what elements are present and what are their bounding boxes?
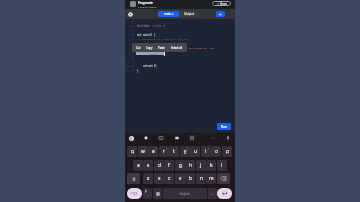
staticText: o (215, 148, 218, 155)
button[interactable]: Run (217, 123, 231, 130)
staticText: 6 (187, 147, 189, 150)
staticText: 5 (129, 38, 131, 41)
button[interactable]: Cut (135, 45, 142, 51)
staticText: y (184, 148, 187, 155)
button[interactable]: x (154, 173, 164, 184)
button[interactable]: l (217, 160, 227, 171)
staticText: 10 (127, 60, 131, 63)
staticText: 2 (145, 147, 147, 150)
staticText: 3 (129, 29, 131, 32)
button[interactable]: a (133, 160, 143, 171)
button[interactable]: Output (179, 11, 199, 17)
button[interactable]: g (175, 160, 185, 171)
button[interactable]: Voice input (226, 136, 230, 140)
button[interactable]: c (164, 173, 174, 184)
staticText: m (209, 175, 214, 182)
button[interactable]: Period (208, 188, 217, 199)
button[interactable]: o (211, 146, 221, 157)
staticText: 11 (127, 64, 131, 67)
staticText: d (158, 162, 161, 169)
staticText: t (173, 148, 175, 155)
staticText: 8 (208, 147, 210, 150)
staticText: <stdio.h> (152, 24, 167, 28)
button[interactable]: Stickers (144, 136, 148, 140)
button[interactable]: Question mark (143, 188, 152, 199)
button[interactable]: e (148, 146, 158, 157)
staticText: l (221, 162, 223, 169)
staticText: Select all (171, 46, 183, 50)
staticText: 6 (129, 42, 131, 45)
staticText: 0 (229, 147, 231, 150)
staticText: j (200, 162, 202, 169)
staticText: . (212, 191, 213, 196)
staticText: ?123 (131, 192, 138, 196)
staticText: English (180, 192, 190, 196)
button[interactable]: Shift (127, 173, 140, 184)
button[interactable]: w (138, 146, 148, 157)
button[interactable]: ?123 (127, 188, 142, 199)
staticText: 4 (166, 147, 168, 150)
button[interactable]: d (154, 160, 164, 171)
button[interactable]: z (143, 173, 153, 184)
staticText: f (168, 162, 170, 169)
button[interactable]: r (159, 146, 169, 157)
button[interactable]: English (163, 188, 207, 199)
button[interactable]: b (185, 173, 195, 184)
staticText: v (179, 175, 182, 182)
button[interactable]: Google (129, 136, 134, 141)
button[interactable]: u (190, 146, 200, 157)
staticText: g (179, 162, 182, 169)
button[interactable]: q (127, 146, 137, 157)
button[interactable]: Copy (145, 45, 154, 51)
button[interactable]: GIF (159, 136, 163, 140)
button[interactable]: j (196, 160, 206, 171)
staticText: 5 (176, 147, 178, 150)
staticText: s (147, 162, 150, 169)
staticText: z (147, 175, 150, 182)
staticText: p (226, 148, 229, 155)
button[interactable]: Settings (190, 136, 194, 140)
staticText: #include (137, 24, 152, 28)
button[interactable]: v (175, 173, 185, 184)
button[interactable]: s (143, 160, 153, 171)
button[interactable]: Enter (217, 188, 232, 199)
button[interactable]: n (196, 173, 206, 184)
button[interactable]: i (201, 146, 211, 157)
button[interactable]: Emoji (153, 188, 162, 199)
button[interactable]: t (169, 146, 179, 157)
button[interactable]: main.c (158, 11, 179, 17)
staticText: // displaying the contents of the int (137, 38, 188, 41)
staticText: 9 (218, 147, 220, 150)
staticText: i (205, 148, 207, 155)
staticText: c (168, 175, 171, 182)
staticText: Output (184, 12, 195, 16)
button[interactable]: Clipboard (175, 136, 179, 140)
button[interactable]: m (206, 173, 216, 184)
staticText: ? (145, 190, 147, 194)
staticText: 4 (129, 33, 131, 36)
staticText: w (141, 148, 145, 155)
staticText: Cut (136, 46, 141, 50)
button[interactable]: Settings (127, 11, 133, 17)
button[interactable]: Run code (216, 11, 225, 17)
button[interactable]: Share (212, 1, 231, 6)
staticText: 7 (197, 147, 199, 150)
staticText: 9 (129, 56, 131, 59)
staticText: } (137, 69, 139, 73)
staticText: k (210, 162, 213, 169)
button[interactable]: Paste (157, 45, 167, 51)
staticText: Paste (158, 46, 166, 50)
button[interactable]: Select all (170, 45, 184, 51)
button[interactable]: More options (211, 136, 215, 140)
button[interactable]: p (222, 146, 232, 157)
staticText: printf (149, 52, 158, 55)
staticText: Programiz (138, 1, 153, 5)
staticText: Copy (146, 46, 153, 50)
button[interactable]: h (185, 160, 195, 171)
button[interactable]: f (164, 160, 174, 171)
button[interactable]: k (206, 160, 216, 171)
staticText: u (194, 148, 197, 155)
button[interactable]: Backspace (217, 173, 230, 184)
staticText: Run (221, 125, 227, 129)
button[interactable]: y (180, 146, 190, 157)
